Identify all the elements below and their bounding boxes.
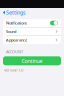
button[interactable]: Notifications [3, 19, 61, 27]
button[interactable]: Settings [0, 8, 26, 17]
button[interactable]: Continue [3, 56, 61, 65]
staticText: Continue [21, 57, 42, 64]
button[interactable]: Sound [3, 27, 61, 35]
staticText: Notifications [6, 20, 27, 26]
staticText: Settings [6, 9, 26, 16]
button[interactable]: Appearance [3, 36, 61, 44]
staticText: Version 1.0 [4, 67, 23, 73]
staticText: Appearance [6, 37, 27, 43]
staticText: ACCOUNT [6, 49, 23, 54]
staticText: Sound [6, 29, 16, 34]
